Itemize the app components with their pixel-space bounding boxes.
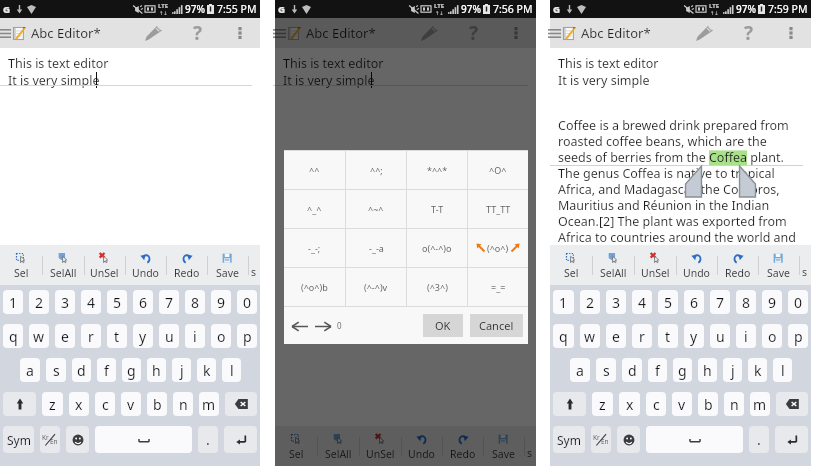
button[interactable]: Help [459, 18, 489, 48]
button[interactable]: (^o^) [468, 229, 528, 267]
button[interactable]: SelAll [592, 245, 634, 285]
button[interactable]: g [122, 358, 141, 382]
button[interactable]: r [632, 324, 652, 348]
button[interactable]: Edit [414, 18, 444, 48]
button[interactable]: Edit [689, 18, 719, 48]
button[interactable]: f [97, 358, 116, 382]
button[interactable]: a [570, 358, 590, 382]
button[interactable]: Backspace [225, 392, 257, 416]
button[interactable]: Save [483, 426, 524, 466]
button[interactable]: ^~^ [346, 190, 406, 228]
button[interactable]: Space [95, 426, 192, 453]
button[interactable]: Emoji [66, 426, 89, 453]
button[interactable]: 3 [55, 290, 75, 314]
button[interactable]: e [606, 324, 626, 348]
button[interactable]: SelAll [317, 426, 359, 466]
button[interactable]: s [596, 358, 616, 382]
button[interactable]: 7 [710, 290, 730, 314]
button[interactable]: 0 [237, 290, 257, 314]
button[interactable]: Sel [550, 245, 592, 285]
button[interactable]: z [42, 392, 63, 416]
button[interactable]: ^_^ [284, 190, 345, 228]
button[interactable]: i [185, 324, 205, 348]
button[interactable]: ^^; [346, 151, 406, 189]
button[interactable]: More options [776, 18, 806, 48]
button[interactable]: p [237, 324, 257, 348]
button[interactable]: u [710, 324, 730, 348]
button[interactable]: UnSel [359, 426, 401, 466]
button[interactable]: 5 [658, 290, 678, 314]
button[interactable]: =_= [468, 268, 528, 306]
button[interactable]: TT_TT [468, 190, 528, 228]
button[interactable]: 9 [211, 290, 231, 314]
button[interactable]: i [736, 324, 756, 348]
button[interactable]: Menu [0, 20, 12, 46]
button[interactable]: Sel [275, 426, 317, 466]
button[interactable]: y [133, 324, 153, 348]
button[interactable]: Redo [166, 245, 207, 285]
button[interactable]: 8 [736, 290, 756, 314]
button[interactable]: 5 [107, 290, 127, 314]
button[interactable]: x [69, 392, 89, 416]
button[interactable]: . [198, 426, 218, 453]
button[interactable]: Menu [550, 20, 562, 46]
button[interactable]: w [580, 324, 600, 348]
button[interactable]: b [147, 392, 167, 416]
button[interactable]: T-T [407, 190, 467, 228]
button[interactable]: z [592, 392, 613, 416]
button[interactable]: (^o^)b [284, 268, 345, 306]
button[interactable]: 6 [133, 290, 153, 314]
button[interactable]: o [211, 324, 231, 348]
button[interactable]: Sym [553, 426, 585, 453]
button[interactable]: Enter [775, 426, 808, 453]
button[interactable]: Sel [0, 245, 42, 285]
button[interactable]: ^O^ [468, 151, 528, 189]
button[interactable]: j [172, 358, 191, 382]
button[interactable]: Previous page [289, 315, 311, 337]
button[interactable]: Cancel [470, 314, 523, 337]
button[interactable]: Help [734, 18, 764, 48]
button[interactable]: (^3^) [407, 268, 467, 306]
button[interactable]: c [646, 392, 666, 416]
button[interactable]: m [750, 392, 770, 416]
button[interactable]: Sym [3, 426, 34, 453]
button[interactable]: Change language [40, 426, 60, 453]
button[interactable]: f [648, 358, 667, 382]
button[interactable]: Redo [717, 245, 758, 285]
button[interactable]: o [762, 324, 782, 348]
button[interactable]: . [749, 426, 769, 453]
button[interactable]: d [622, 358, 642, 382]
button[interactable]: 7 [159, 290, 179, 314]
button[interactable]: Undo [401, 426, 442, 466]
button[interactable]: Next page [312, 315, 334, 337]
button[interactable]: 2 [580, 290, 600, 314]
button[interactable]: n [724, 392, 744, 416]
button[interactable]: Menu [275, 20, 287, 46]
button[interactable]: r [81, 324, 101, 348]
button[interactable]: Enter [224, 426, 257, 453]
button[interactable]: s [46, 358, 66, 382]
button[interactable]: -_-; [284, 229, 345, 267]
button[interactable]: w [29, 324, 49, 348]
button[interactable]: x [619, 392, 640, 416]
button[interactable]: m [199, 392, 219, 416]
button[interactable]: Emoji [617, 426, 640, 453]
button[interactable]: h [698, 358, 717, 382]
button[interactable]: 3 [606, 290, 626, 314]
button[interactable]: q [553, 324, 574, 348]
button[interactable]: a [20, 358, 40, 382]
button[interactable]: n [173, 392, 193, 416]
button[interactable]: 2 [29, 290, 49, 314]
button[interactable]: g [673, 358, 692, 382]
button[interactable]: l [222, 358, 241, 382]
button[interactable]: c [95, 392, 115, 416]
button[interactable]: More options [225, 18, 255, 48]
button[interactable]: t [658, 324, 678, 348]
button[interactable]: Change language [591, 426, 611, 453]
button[interactable]: Redo [442, 426, 483, 466]
button[interactable]: ^^ [284, 151, 345, 189]
button[interactable]: Undo [676, 245, 717, 285]
button[interactable]: -_-a [346, 229, 406, 267]
button[interactable]: j [723, 358, 742, 382]
button[interactable]: Save [758, 245, 799, 285]
